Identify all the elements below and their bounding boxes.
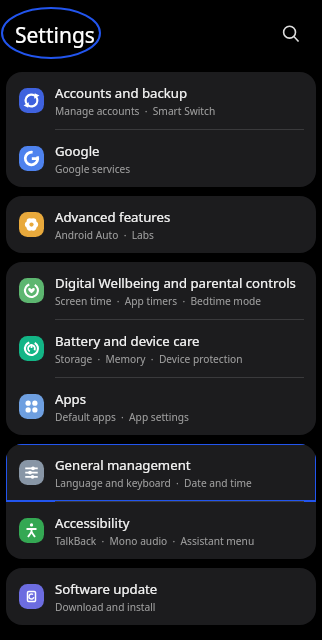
staticText: Google bbox=[55, 142, 100, 160]
button[interactable]: General management bbox=[6, 444, 316, 501]
button[interactable]: Search bbox=[274, 17, 308, 51]
staticText: Google services bbox=[55, 162, 131, 176]
staticText: Download and install bbox=[55, 600, 156, 614]
button[interactable]: Digital Wellbeing and parental controls bbox=[6, 262, 316, 319]
staticText: Android Auto · Labs bbox=[55, 228, 154, 242]
staticText: Battery and device care bbox=[55, 332, 200, 350]
staticText: TalkBack · Mono audio · Assistant menu bbox=[55, 534, 255, 548]
staticText: Manage accounts · Smart Switch bbox=[55, 104, 216, 118]
staticText: Software update bbox=[55, 580, 158, 598]
staticText: Apps bbox=[55, 390, 86, 408]
staticText: Digital Wellbeing and parental controls bbox=[55, 274, 296, 292]
staticText: Accounts and backup bbox=[55, 84, 188, 102]
button[interactable]: Software update bbox=[6, 568, 316, 625]
staticText: Settings bbox=[15, 21, 95, 50]
button[interactable]: Accessibility bbox=[6, 502, 316, 559]
button[interactable]: Advanced features bbox=[6, 196, 316, 253]
button[interactable]: Apps bbox=[6, 378, 316, 435]
button[interactable]: Google bbox=[6, 130, 316, 187]
staticText: Default apps · App settings bbox=[55, 410, 189, 424]
button[interactable]: Accounts and backup bbox=[6, 72, 316, 129]
staticText: Language and keyboard · Date and time bbox=[55, 476, 252, 490]
staticText: Accessibility bbox=[55, 514, 130, 532]
staticText: Advanced features bbox=[55, 208, 171, 226]
staticText: Storage · Memory · Device protection bbox=[55, 352, 243, 366]
staticText: General management bbox=[55, 456, 191, 474]
staticText: Screen time · App timers · Bedtime mode bbox=[55, 294, 262, 308]
button[interactable]: Battery and device care bbox=[6, 320, 316, 377]
